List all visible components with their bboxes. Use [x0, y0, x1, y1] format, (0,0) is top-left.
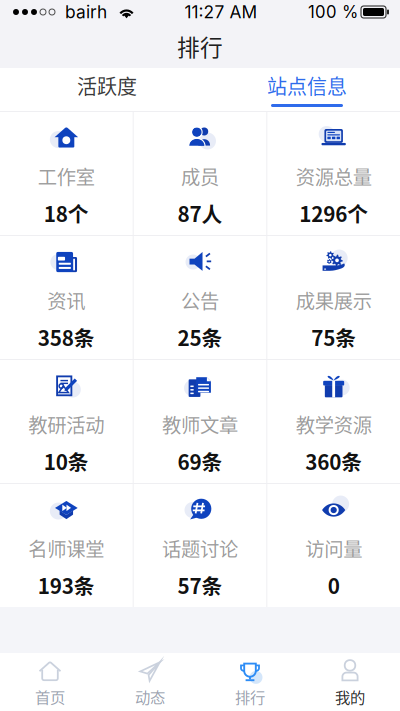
- staticText: 首页: [35, 685, 65, 708]
- staticText: 87人: [177, 198, 222, 228]
- staticText: 公告: [181, 286, 219, 314]
- button[interactable]: 教师文章: [134, 360, 266, 483]
- button[interactable]: 公告: [134, 236, 266, 359]
- staticText: 成员: [181, 162, 219, 190]
- staticText: 排行: [177, 30, 223, 62]
- staticText: 资讯: [47, 286, 85, 314]
- staticText: 10条: [44, 446, 89, 476]
- button[interactable]: 首页: [0, 653, 100, 711]
- staticText: 25条: [177, 322, 222, 352]
- staticText: 教研活动: [28, 410, 104, 438]
- staticText: 0: [328, 570, 340, 600]
- button[interactable]: 名师课堂: [0, 484, 133, 607]
- staticText: 69条: [177, 446, 222, 476]
- staticText: 教师文章: [162, 410, 238, 438]
- button[interactable]: 站点信息: [214, 68, 400, 111]
- staticText: 我的: [335, 685, 365, 708]
- button[interactable]: 动态: [100, 653, 200, 711]
- staticText: 工作室: [38, 162, 95, 190]
- staticText: 话题讨论: [162, 534, 238, 562]
- staticText: 动态: [135, 685, 165, 708]
- staticText: 活跃度: [77, 71, 137, 100]
- staticText: 75条: [311, 322, 356, 352]
- button[interactable]: 话题讨论: [134, 484, 266, 607]
- staticText: 访问量: [305, 534, 362, 562]
- staticText: 360条: [305, 446, 362, 476]
- staticText: 358条: [38, 322, 95, 352]
- button[interactable]: 教学资源: [267, 360, 400, 483]
- button[interactable]: 工作室: [0, 112, 133, 235]
- button[interactable]: 资讯: [0, 236, 133, 359]
- staticText: 排行: [235, 685, 265, 708]
- button[interactable]: 教研活动: [0, 360, 133, 483]
- button[interactable]: 排行: [200, 653, 300, 711]
- button[interactable]: 活跃度: [0, 68, 214, 111]
- button[interactable]: 成员: [134, 112, 266, 235]
- staticText: 1296个: [299, 198, 368, 228]
- staticText: 18个: [44, 198, 89, 228]
- staticText: 教学资源: [296, 410, 372, 438]
- button[interactable]: 访问量: [267, 484, 400, 607]
- button[interactable]: 我的: [300, 653, 400, 711]
- staticText: 站点信息: [267, 71, 347, 100]
- staticText: 名师课堂: [28, 534, 104, 562]
- staticText: 100 %: [308, 2, 358, 22]
- staticText: 193条: [38, 570, 95, 600]
- staticText: 11:27 AM: [184, 1, 257, 22]
- button[interactable]: 资源总量: [267, 112, 400, 235]
- staticText: 57条: [177, 570, 222, 600]
- staticText: 资源总量: [296, 162, 372, 190]
- staticText: 成果展示: [296, 286, 372, 314]
- staticText: bairh: [65, 1, 107, 22]
- button[interactable]: 成果展示: [267, 236, 400, 359]
